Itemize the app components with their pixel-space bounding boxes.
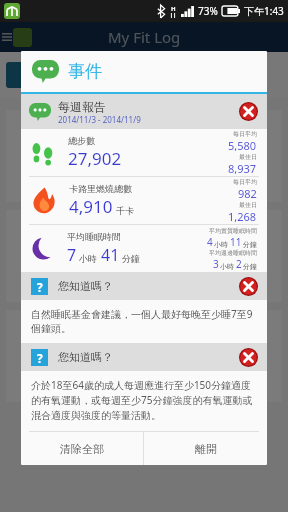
staticText: 2014/11/3 - 2014/11/9 [58,114,141,125]
staticText: 2 [236,257,242,271]
staticText: 您知道嗎？ [58,279,113,293]
staticText: 5,580 [228,138,257,153]
button[interactable]: Dismiss [239,348,258,367]
staticText: 73% [198,4,218,18]
staticText: 總步數 [68,135,95,146]
staticText: My Fit Log [108,27,181,47]
staticText: 每日平均 [233,178,257,186]
button[interactable]: Dismiss [239,277,258,296]
staticText: 平均實質睡眠時間 [209,227,257,235]
staticText: 27,902 [68,147,122,170]
staticText: 您知道嗎？ [58,350,113,364]
staticText: 小時 [79,253,97,264]
staticText: 7 [67,244,77,266]
staticText: 4 [207,235,213,249]
staticText: ? [37,279,43,295]
staticText: 3 [213,257,219,271]
staticText: 4,910 [69,195,113,218]
staticText: 最佳日 [239,153,257,161]
staticText: H [171,5,176,13]
staticText: 介於18至64歲的成人每週應進行至少150分鐘適度的有氧運動，或每週至少75分鐘… [31,378,257,422]
staticText: ? [37,350,43,366]
staticText: 982 [238,186,257,201]
staticText: 分鐘 [122,253,140,264]
staticText: 下午1:43 [244,4,284,18]
staticText: 千卡 [116,205,134,216]
staticText: 每日平均 [233,130,257,138]
staticText: 分鐘 [243,262,257,271]
staticText: 卡路里燃燒總數 [69,183,132,194]
staticText: 11 [230,235,242,249]
button[interactable]: 離開 [144,432,267,465]
staticText: 8,937 [228,161,257,176]
staticText: 41 [101,244,120,266]
button[interactable]: 清除全部 [21,432,143,465]
staticText: 小時 [220,262,234,271]
staticText: 每週報告 [58,99,106,114]
staticText: 分鐘 [243,240,257,249]
button[interactable]: Dismiss [239,102,258,121]
staticText: 自然睡眠基金會建議，一個人最好每晚至少睡7至9個鐘頭。 [31,307,257,335]
staticText: 最佳日 [239,201,257,209]
staticText: 離開 [195,442,217,456]
staticText: 1,268 [228,209,257,224]
staticText: 平均週邊睡眠時間 [209,249,257,257]
staticText: 小時 [214,240,228,249]
staticText: 清除全部 [60,442,104,456]
staticText: 平均睡眠時間 [67,231,121,242]
staticText: 事件 [68,61,102,82]
